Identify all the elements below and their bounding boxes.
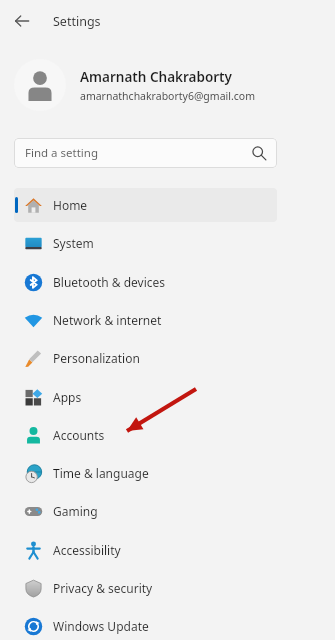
staticText: Network & internet bbox=[53, 312, 162, 328]
staticText: Settings bbox=[53, 13, 101, 30]
button[interactable]: Apps bbox=[14, 380, 277, 414]
button[interactable]: Gaming bbox=[14, 494, 277, 528]
button[interactable]: Windows Update bbox=[14, 609, 277, 640]
staticText: Accessibility bbox=[53, 542, 121, 558]
staticText: Home bbox=[53, 197, 88, 213]
button[interactable]: Amarnath Chakraborty bbox=[0, 59, 335, 111]
button[interactable]: System bbox=[14, 226, 277, 260]
staticText: System bbox=[53, 235, 94, 251]
button[interactable]: Accessibility bbox=[14, 533, 277, 567]
staticText: Windows Update bbox=[53, 618, 149, 634]
button[interactable]: Privacy & security bbox=[14, 571, 277, 605]
button[interactable]: Home bbox=[14, 188, 277, 222]
button[interactable]: Personalization bbox=[14, 341, 277, 375]
button[interactable]: Network & internet bbox=[14, 303, 277, 337]
staticText: Bluetooth & devices bbox=[53, 274, 166, 290]
staticText: Personalization bbox=[53, 350, 140, 366]
button[interactable]: Back bbox=[8, 7, 36, 35]
button[interactable]: Accounts bbox=[14, 418, 277, 452]
button[interactable]: Time & language bbox=[14, 456, 277, 490]
staticText: Amarnath Chakraborty bbox=[80, 68, 232, 86]
staticText: Gaming bbox=[53, 503, 98, 519]
staticText: Accounts bbox=[53, 427, 105, 443]
staticText: amarnathchakraborty6@gmail.com bbox=[80, 89, 255, 103]
button[interactable]: Bluetooth & devices bbox=[14, 265, 277, 299]
staticText: Apps bbox=[53, 389, 82, 405]
staticText: Time & language bbox=[53, 465, 149, 481]
staticText: Privacy & security bbox=[53, 580, 153, 596]
staticText: Find a setting bbox=[25, 145, 98, 161]
button[interactable]: Find a setting bbox=[14, 138, 277, 168]
